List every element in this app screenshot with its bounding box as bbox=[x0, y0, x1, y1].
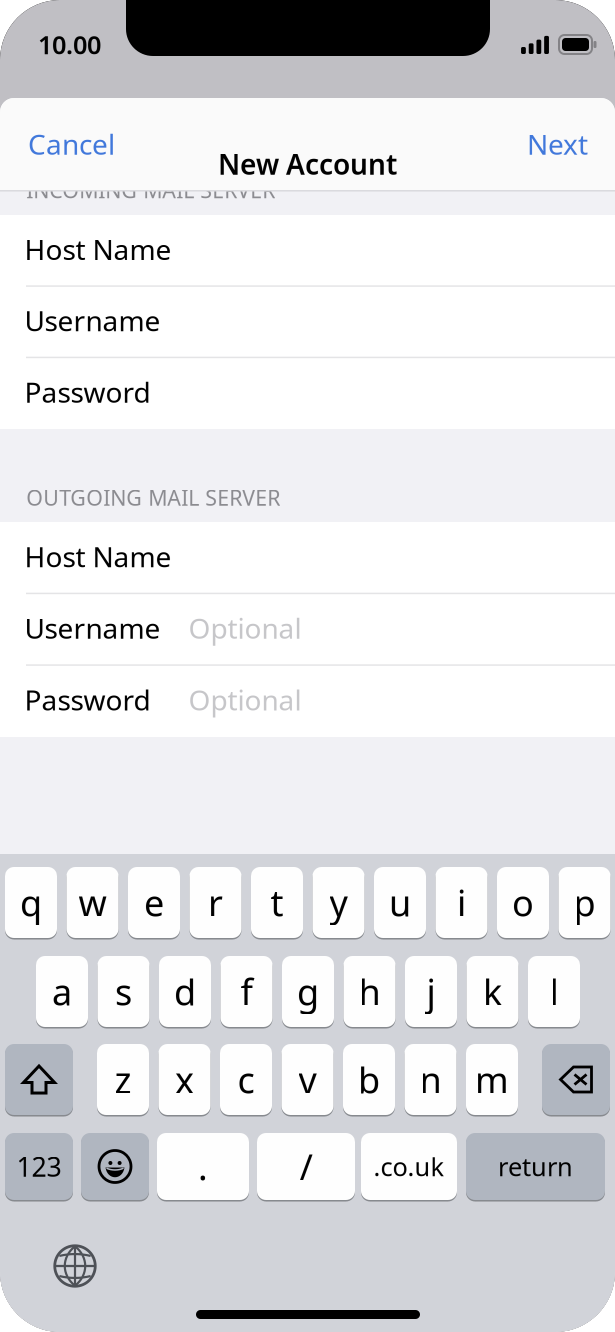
button[interactable]: s bbox=[97, 956, 149, 1027]
button[interactable]: h bbox=[343, 956, 395, 1027]
button[interactable]: / bbox=[257, 1133, 355, 1200]
button[interactable]: u bbox=[374, 867, 426, 938]
button[interactable]: r bbox=[189, 867, 241, 938]
staticText: INCOMING MAIL SERVER bbox=[26, 176, 275, 204]
button[interactable]: return bbox=[466, 1133, 605, 1200]
button[interactable]: Next keyboard bbox=[49, 1240, 101, 1292]
button[interactable]: 123 bbox=[5, 1133, 73, 1200]
staticText: y bbox=[329, 879, 347, 926]
button[interactable]: Password bbox=[0, 358, 615, 429]
staticText: Optional bbox=[188, 609, 301, 647]
staticText: OUTGOING MAIL SERVER bbox=[26, 483, 280, 512]
button[interactable]: x bbox=[158, 1044, 210, 1115]
staticText: d bbox=[174, 968, 196, 1015]
button[interactable]: Emoji bbox=[81, 1133, 149, 1200]
staticText: New Account bbox=[218, 145, 397, 183]
button[interactable]: q bbox=[5, 867, 57, 938]
staticText: Cancel bbox=[28, 125, 115, 163]
staticText: s bbox=[115, 968, 132, 1015]
staticText: b bbox=[358, 1056, 380, 1103]
button[interactable]: m bbox=[466, 1044, 518, 1115]
button[interactable]: t bbox=[251, 867, 303, 938]
staticText: h bbox=[358, 968, 380, 1015]
staticText: Host Name bbox=[24, 231, 171, 268]
staticText: 10.00 bbox=[38, 28, 101, 61]
staticText: .co.uk bbox=[373, 1150, 444, 1183]
staticText: j bbox=[426, 968, 435, 1015]
staticText: l bbox=[549, 968, 558, 1015]
button[interactable]: o bbox=[497, 867, 549, 938]
button[interactable]: b bbox=[343, 1044, 395, 1115]
staticText: o bbox=[512, 879, 534, 926]
button[interactable]: Host Name bbox=[0, 215, 615, 286]
button[interactable]: j bbox=[405, 956, 457, 1027]
button[interactable]: a bbox=[36, 956, 88, 1027]
button[interactable]: Password bbox=[0, 665, 615, 737]
staticText: w bbox=[78, 879, 106, 926]
button[interactable]: k bbox=[466, 956, 518, 1027]
staticText: Host Name bbox=[24, 538, 171, 575]
button[interactable]: v bbox=[281, 1044, 333, 1115]
button[interactable]: Username bbox=[0, 594, 615, 665]
staticText: p bbox=[573, 879, 595, 926]
staticText: a bbox=[52, 968, 72, 1015]
staticText: u bbox=[389, 879, 411, 926]
button[interactable]: e bbox=[128, 867, 180, 938]
staticText: Username bbox=[24, 609, 160, 647]
staticText: Optional bbox=[188, 681, 301, 718]
button[interactable]: n bbox=[404, 1044, 456, 1115]
button[interactable]: .co.uk bbox=[361, 1133, 457, 1200]
staticText: return bbox=[498, 1150, 573, 1183]
staticText: m bbox=[475, 1056, 509, 1103]
staticText: / bbox=[299, 1143, 312, 1190]
button[interactable]: z bbox=[97, 1044, 149, 1115]
button[interactable]: Delete bbox=[542, 1044, 610, 1115]
button[interactable]: Cancel bbox=[0, 98, 180, 190]
staticText: i bbox=[457, 879, 466, 926]
staticText: v bbox=[298, 1056, 316, 1103]
staticText: q bbox=[20, 879, 42, 926]
button[interactable]: p bbox=[558, 867, 610, 938]
button[interactable]: l bbox=[528, 956, 580, 1027]
button[interactable]: Shift bbox=[5, 1044, 73, 1115]
staticText: c bbox=[237, 1056, 254, 1103]
staticText: 123 bbox=[16, 1149, 61, 1184]
staticText: . bbox=[198, 1143, 208, 1190]
button[interactable]: Next bbox=[435, 98, 615, 190]
staticText: k bbox=[483, 968, 502, 1015]
staticText: x bbox=[175, 1056, 194, 1103]
staticText: Username bbox=[24, 302, 160, 339]
button[interactable]: f bbox=[220, 956, 272, 1027]
staticText: t bbox=[270, 879, 283, 926]
button[interactable]: Host Name bbox=[0, 522, 615, 594]
staticText: f bbox=[240, 968, 252, 1015]
button[interactable]: c bbox=[220, 1044, 272, 1115]
button[interactable]: . bbox=[157, 1133, 249, 1200]
staticText: Password bbox=[24, 373, 150, 410]
button[interactable]: d bbox=[159, 956, 211, 1027]
staticText: n bbox=[419, 1056, 441, 1103]
button[interactable]: i bbox=[435, 867, 487, 938]
button[interactable]: w bbox=[66, 867, 118, 938]
button[interactable]: g bbox=[282, 956, 334, 1027]
staticText: Next bbox=[527, 125, 588, 163]
button[interactable]: Username bbox=[0, 286, 615, 358]
staticText: e bbox=[144, 879, 164, 926]
staticText: r bbox=[208, 879, 223, 926]
staticText: z bbox=[114, 1056, 131, 1103]
staticText: g bbox=[297, 968, 319, 1015]
staticText: Password bbox=[24, 681, 150, 718]
button[interactable]: y bbox=[312, 867, 364, 938]
